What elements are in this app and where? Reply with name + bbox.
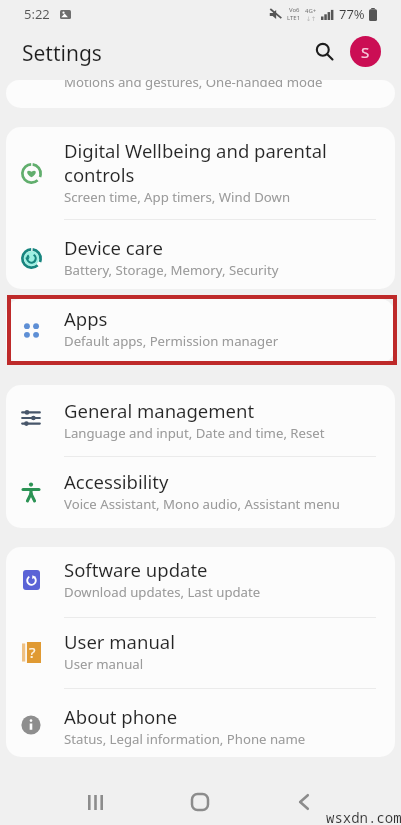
button[interactable]: Back (269, 757, 339, 825)
button[interactable]: Device care (6, 220, 395, 289)
button[interactable]: Home (165, 757, 235, 825)
button[interactable]: ? (6, 618, 395, 688)
staticText: About phone (64, 704, 178, 729)
button[interactable]: Account (350, 36, 381, 67)
staticText: General management (64, 398, 255, 423)
staticText: Settings (22, 39, 102, 68)
staticText: Download updates, Last update (64, 583, 261, 601)
staticText: LTE1 (287, 14, 301, 22)
staticText: 5:22 (24, 5, 50, 23)
staticText: Motions and gestures, One-handed mode (64, 80, 323, 91)
staticText: ? (29, 642, 36, 662)
staticText: Accessibility (64, 469, 169, 494)
button[interactable]: Accessibility (6, 457, 395, 528)
staticText: User manual (64, 655, 144, 673)
staticText: Voice Assistant, Mono audio, Assistant m… (64, 495, 340, 513)
button[interactable]: General management (6, 385, 395, 456)
button[interactable]: Software update (6, 547, 395, 617)
staticText: Default apps, Permission manager (64, 332, 279, 350)
staticText: ↓↑ (306, 15, 317, 22)
staticText: Battery, Storage, Memory, Security (64, 261, 279, 279)
staticText: Device care (64, 235, 163, 260)
staticText: 4G+ (305, 7, 317, 15)
staticText: Screen time, App timers, Wind Down (64, 188, 291, 206)
staticText: Language and input, Date and time, Reset (64, 424, 325, 442)
button[interactable]: Recents (60, 757, 130, 825)
button[interactable]: Search (305, 32, 343, 70)
staticText: Digital Wellbeing and parental controls (64, 138, 327, 187)
staticText: Software update (64, 557, 208, 582)
staticText: Status, Legal information, Phone name (64, 730, 306, 748)
staticText: 77% (339, 5, 365, 23)
staticText: Apps (64, 306, 108, 331)
staticText: wsxdn.com (326, 808, 401, 825)
staticText: Vo6 (289, 6, 300, 14)
staticText: User manual (64, 629, 175, 654)
button[interactable]: About phone (6, 689, 395, 757)
staticText: S (361, 42, 370, 62)
button[interactable]: Apps (6, 299, 395, 363)
button[interactable]: Digital Wellbeing and parental controls (6, 127, 395, 219)
